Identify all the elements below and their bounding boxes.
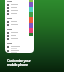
button[interactable] [5,37,34,40]
button[interactable] [5,45,34,49]
button[interactable] [5,3,34,6]
button[interactable] [5,49,34,53]
button[interactable] [5,6,34,9]
button[interactable] [5,9,34,12]
button[interactable] [5,23,34,26]
button[interactable] [5,20,34,23]
button[interactable] [5,34,34,37]
staticText: Customize your mobile phone [7,58,39,68]
button[interactable] [5,12,34,15]
button[interactable] [5,31,34,34]
